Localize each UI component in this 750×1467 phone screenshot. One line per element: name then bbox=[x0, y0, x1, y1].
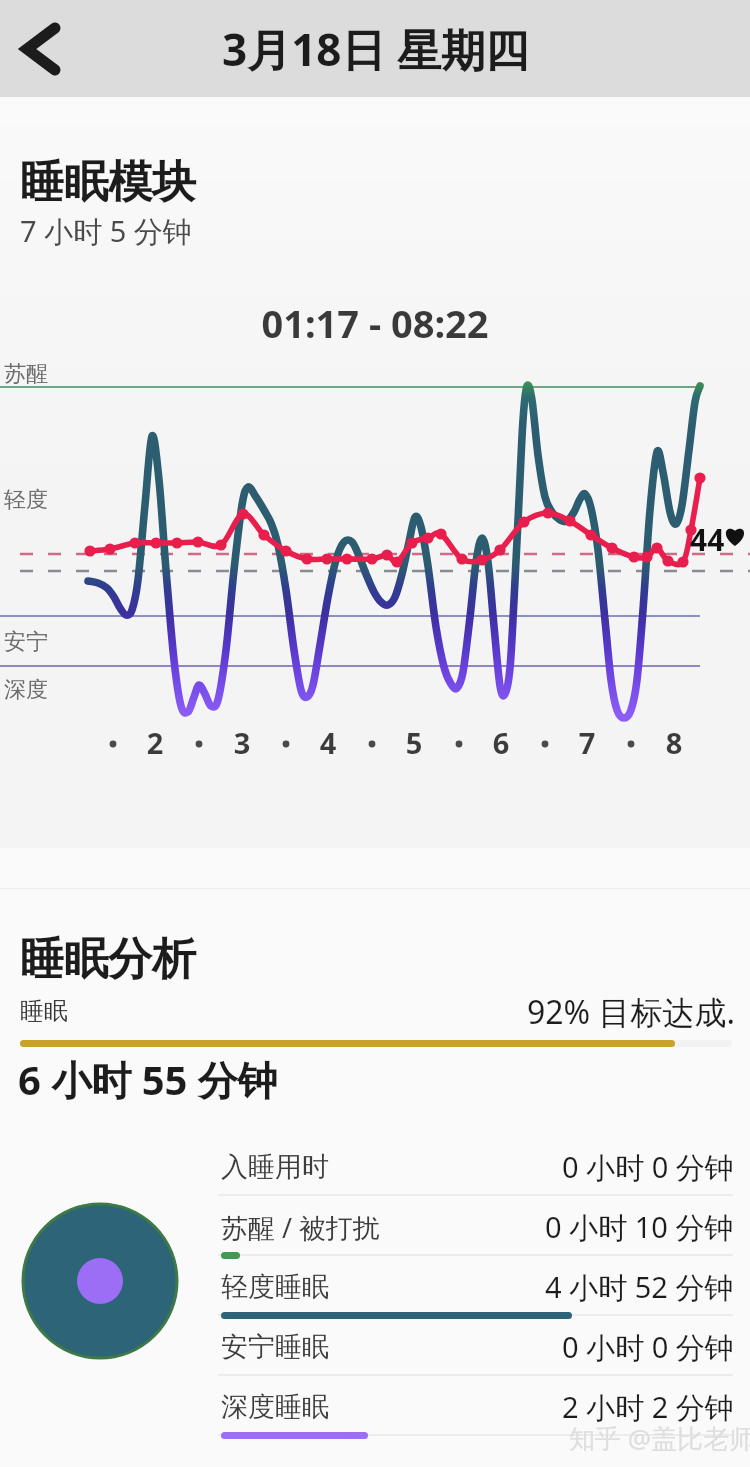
staticText: 3月18日 星期四 bbox=[222, 19, 529, 79]
staticText: 7 小时 5 分钟 bbox=[20, 211, 192, 251]
staticText: 安宁睡眠 bbox=[221, 1330, 329, 1364]
staticText: 5 bbox=[394, 723, 434, 762]
staticText: 苏醒 / 被打扰 bbox=[221, 1209, 381, 1246]
button[interactable]: 苏醒 / 被打扰 bbox=[221, 1197, 734, 1257]
staticText: 6 bbox=[481, 723, 521, 762]
staticText: 睡眠 bbox=[20, 996, 68, 1026]
staticText: 深度 bbox=[4, 676, 48, 704]
staticText: 01:17 - 08:22 bbox=[0, 297, 750, 349]
staticText: 4 小时 52 分钟 bbox=[545, 1267, 734, 1307]
staticText: 安宁 bbox=[4, 628, 48, 656]
staticText: 92% 目标达成. bbox=[527, 990, 736, 1034]
staticText: 6 小时 55 分钟 bbox=[18, 1052, 278, 1107]
staticText: 轻度睡眠 bbox=[221, 1270, 329, 1304]
staticText: 44 bbox=[690, 519, 725, 560]
button[interactable]: 轻度睡眠 bbox=[221, 1257, 734, 1317]
staticText: 7 bbox=[567, 723, 607, 762]
button[interactable]: 深度睡眠 bbox=[221, 1377, 734, 1437]
staticText: 知乎 @盖比老师 bbox=[569, 1420, 750, 1456]
staticText: 8 bbox=[654, 723, 694, 762]
staticText: 深度睡眠 bbox=[221, 1390, 329, 1424]
staticText: 4 bbox=[308, 723, 348, 762]
staticText: 2 bbox=[135, 723, 175, 762]
staticText: 苏醒 bbox=[4, 360, 48, 388]
staticText: 3 bbox=[222, 723, 262, 762]
staticText: 0 小时 0 分钟 bbox=[562, 1147, 734, 1187]
staticText: 睡眠分析 bbox=[20, 932, 196, 987]
staticText: 0 小时 0 分钟 bbox=[562, 1327, 734, 1367]
staticText: 0 小时 10 分钟 bbox=[545, 1207, 734, 1247]
button[interactable]: Back bbox=[0, 0, 92, 97]
staticText: 2 小时 2 分钟 bbox=[562, 1387, 734, 1427]
button[interactable]: 安宁睡眠 bbox=[221, 1317, 734, 1377]
staticText: 轻度 bbox=[4, 486, 48, 514]
staticText: 睡眠模块 bbox=[20, 155, 196, 210]
button[interactable]: 入睡用时 bbox=[221, 1137, 734, 1197]
staticText: 入睡用时 bbox=[221, 1150, 329, 1184]
